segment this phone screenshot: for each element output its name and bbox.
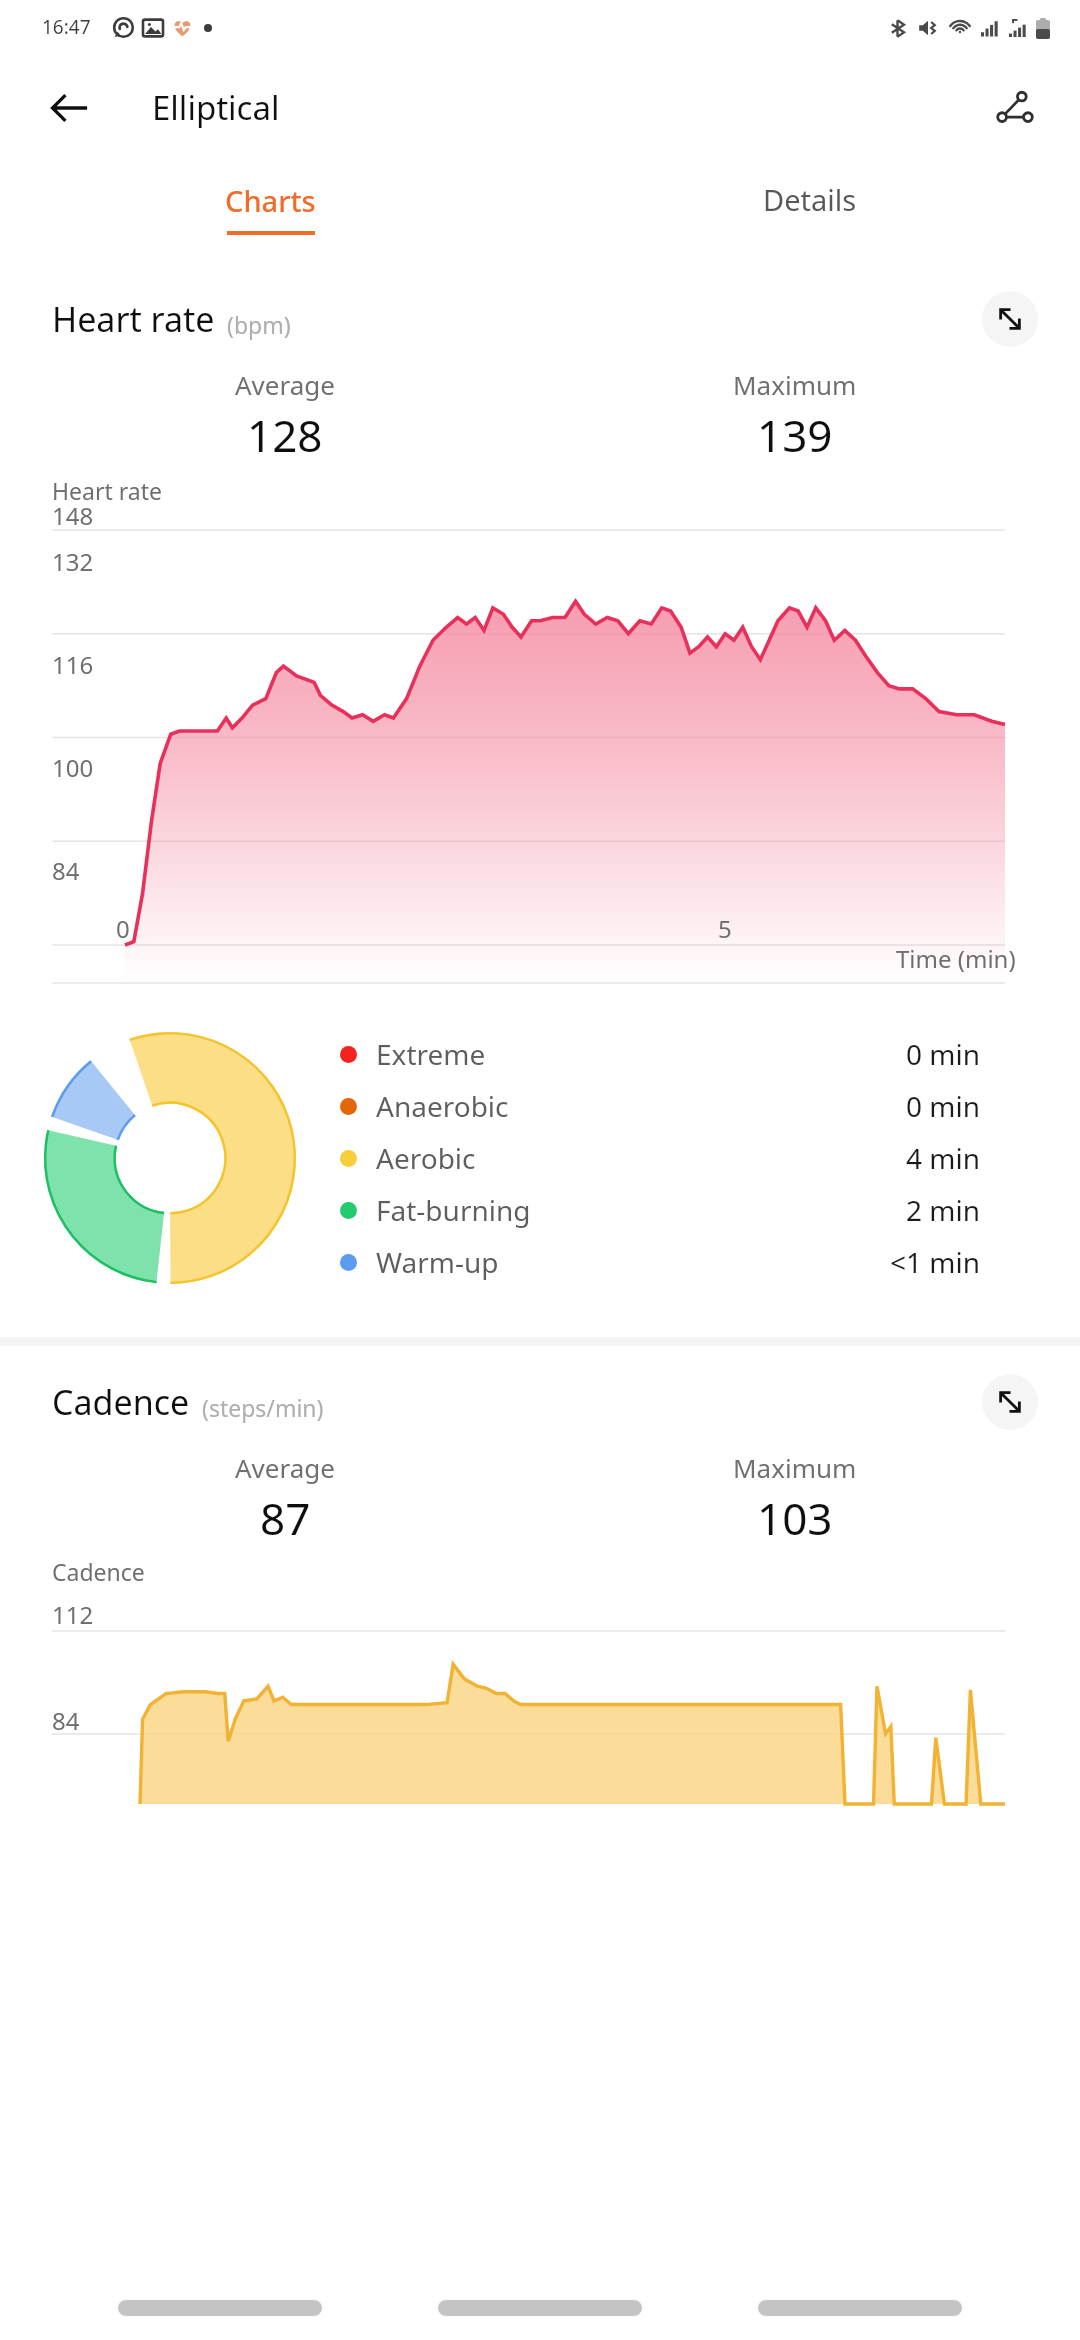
staticText: 5 bbox=[718, 912, 732, 945]
staticText: Average bbox=[235, 367, 335, 402]
staticText: 87 bbox=[260, 1488, 311, 1548]
staticText: Fat-burning bbox=[376, 1191, 531, 1229]
staticText: <1 min bbox=[889, 1243, 980, 1281]
staticText: Cadence bbox=[52, 1556, 145, 1587]
button[interactable]: Anaerobic bbox=[340, 1080, 980, 1132]
button[interactable]: Share bbox=[982, 75, 1048, 141]
staticText: Maximum bbox=[733, 1450, 857, 1485]
staticText: Warm-up bbox=[376, 1243, 499, 1281]
staticText: 2 min bbox=[905, 1191, 980, 1229]
button[interactable]: Expand chart bbox=[982, 291, 1038, 347]
button[interactable]: Back bbox=[40, 78, 100, 138]
staticText: Heart rate bbox=[52, 296, 215, 342]
staticText: Anaerobic bbox=[376, 1087, 509, 1125]
button[interactable]: Fat-burning bbox=[340, 1184, 980, 1236]
button[interactable]: Details bbox=[540, 160, 1080, 255]
staticText: Elliptical bbox=[152, 85, 280, 130]
staticText: 116 bbox=[52, 648, 94, 681]
staticText: Maximum bbox=[733, 367, 857, 402]
staticText: 148 bbox=[52, 499, 94, 532]
button[interactable]: Back bbox=[758, 2300, 962, 2316]
staticText: 100 bbox=[52, 751, 94, 784]
staticText: 0 min bbox=[905, 1035, 980, 1073]
staticText: 84 bbox=[52, 1704, 80, 1737]
staticText: (steps/min) bbox=[202, 1392, 324, 1423]
staticText: Aerobic bbox=[376, 1139, 476, 1177]
staticText: 16:47 bbox=[42, 14, 91, 40]
staticText: Heart rate bbox=[52, 475, 162, 506]
button[interactable]: Expand chart bbox=[982, 1374, 1038, 1430]
staticText: 0 min bbox=[905, 1087, 980, 1125]
staticText: (bpm) bbox=[227, 309, 291, 340]
staticText: Average bbox=[235, 1450, 335, 1485]
staticText: Cadence bbox=[52, 1379, 190, 1425]
staticText: Charts bbox=[225, 181, 316, 220]
staticText: 103 bbox=[757, 1488, 833, 1548]
button[interactable]: Extreme bbox=[340, 1028, 980, 1080]
staticText: Extreme bbox=[376, 1035, 486, 1073]
button[interactable]: Home bbox=[438, 2300, 642, 2316]
staticText: 0 bbox=[116, 912, 130, 945]
staticText: 128 bbox=[247, 405, 323, 465]
button[interactable]: Warm-up bbox=[340, 1236, 980, 1288]
staticText: Time (min) bbox=[896, 942, 1016, 975]
staticText: 4 min bbox=[905, 1139, 980, 1177]
staticText: 84 bbox=[52, 854, 80, 887]
staticText: 112 bbox=[52, 1598, 94, 1631]
staticText: Details bbox=[763, 180, 857, 219]
staticText: 132 bbox=[52, 545, 94, 578]
button[interactable]: Charts bbox=[0, 160, 540, 255]
staticText: 139 bbox=[757, 405, 833, 465]
button[interactable]: Aerobic bbox=[340, 1132, 980, 1184]
button[interactable]: Recents bbox=[118, 2300, 322, 2316]
